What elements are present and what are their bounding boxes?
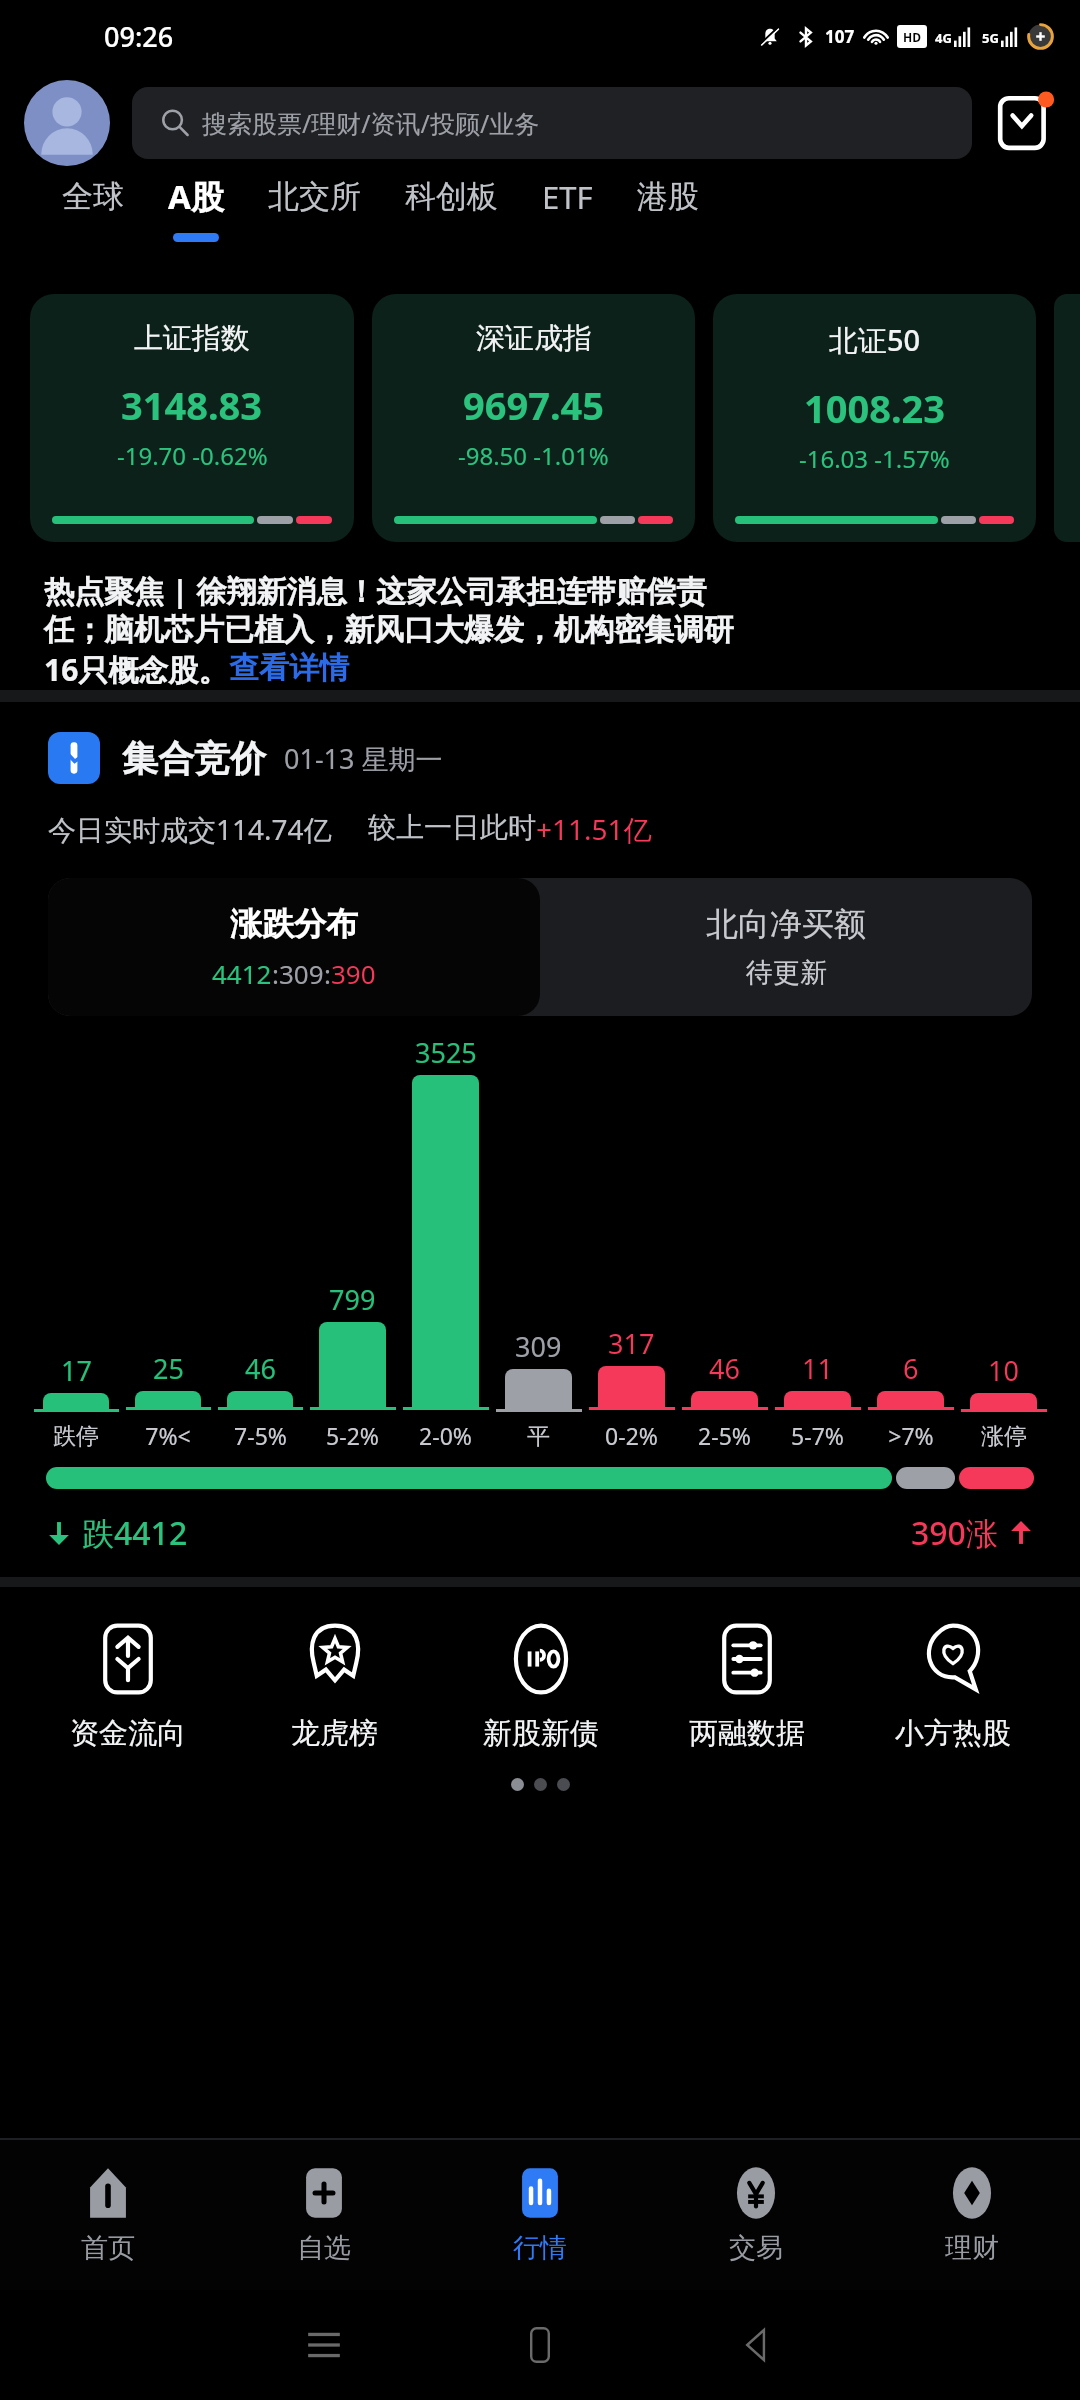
button[interactable]: 热点聚焦 | 徐翔新消息！这家公司承担连带赔偿责 <box>44 570 1040 690</box>
button[interactable]: 港股 <box>615 177 721 239</box>
button[interactable]: 自选 <box>216 2140 432 2290</box>
button[interactable]: A股 <box>146 174 246 242</box>
button[interactable]: 小方热股 <box>850 1621 1056 1752</box>
staticText: 深证成指 <box>476 320 592 357</box>
button[interactable]: Profile <box>24 80 110 166</box>
button[interactable]: 3525 <box>399 1034 492 1451</box>
staticText: 热点聚焦 | 徐翔新消息！这家公司承担连带赔偿责 <box>44 570 707 611</box>
staticText: >7% <box>888 1420 934 1451</box>
staticText: 2-5% <box>698 1420 751 1451</box>
button[interactable]: 11 <box>771 1034 864 1451</box>
staticText: 资金流向 <box>70 1715 186 1752</box>
button[interactable]: 新股新债 <box>438 1621 644 1752</box>
staticText: 北交所 <box>268 177 361 216</box>
staticText: 科创板 <box>405 177 498 216</box>
staticText: 5-7% <box>791 1420 844 1451</box>
staticText: 317 <box>608 1325 655 1362</box>
staticText: -19.70 -0.62% <box>117 439 268 472</box>
button[interactable]: 资金流向 <box>24 1621 231 1752</box>
button[interactable]: Home <box>432 2323 648 2367</box>
button[interactable]: 309 <box>492 1036 585 1451</box>
button[interactable]: 317 <box>585 1034 678 1451</box>
staticText: 4412 <box>212 956 272 991</box>
staticText: ETF <box>542 176 593 218</box>
button[interactable]: 理财 <box>864 2140 1080 2290</box>
button[interactable]: 两融数据 <box>644 1621 850 1752</box>
staticText: 涨跌分布 <box>230 904 358 944</box>
staticText: 7%< <box>145 1420 191 1451</box>
staticText: 北证50 <box>829 320 921 360</box>
button[interactable]: 科创板 <box>383 177 520 239</box>
button[interactable]: 25 <box>122 1034 214 1451</box>
staticText: 北向净买额 <box>706 904 866 944</box>
staticText: 较上一日此时 <box>368 810 536 845</box>
staticText: A股 <box>168 174 224 219</box>
staticText: 自选 <box>297 2231 351 2265</box>
staticText: 今日实时成交114.74亿 <box>48 810 332 848</box>
button[interactable]: Back <box>648 2323 864 2367</box>
button[interactable]: 46 <box>678 1034 771 1451</box>
button[interactable]: 799 <box>306 1034 399 1451</box>
staticText: 46 <box>245 1350 276 1387</box>
staticText: HD <box>903 29 921 45</box>
staticText: 港股 <box>637 177 699 216</box>
staticText: 跌停 <box>53 1422 99 1451</box>
button[interactable]: 北交所 <box>246 177 383 239</box>
staticText: 3525 <box>415 1034 477 1071</box>
button[interactable]: 全球 <box>40 177 146 239</box>
staticText: 46 <box>709 1350 740 1387</box>
staticText: 集合竞价 <box>122 736 266 781</box>
staticText: 09:26 <box>104 18 174 55</box>
button[interactable]: 6 <box>864 1034 957 1451</box>
button[interactable]: 北证50 <box>713 294 1036 542</box>
button[interactable]: 涨跌分布 <box>48 878 540 1016</box>
staticText: 跌4412 <box>82 1511 188 1555</box>
staticText: 首页 <box>81 2231 135 2265</box>
staticText: : <box>324 956 331 991</box>
staticText: 任；脑机芯片已植入，新风口大爆发，机构密集调研 <box>44 611 734 649</box>
button[interactable]: 46 <box>214 1034 306 1451</box>
staticText: 16只概念股。 <box>44 649 229 690</box>
staticText: 交易 <box>729 2231 783 2265</box>
staticText: 行情 <box>513 2231 567 2265</box>
button[interactable]: 上证指数 <box>30 294 354 542</box>
staticText: 涨停 <box>981 1422 1027 1451</box>
staticText: 4G <box>935 29 952 47</box>
staticText: : <box>272 956 279 991</box>
staticText: 309 <box>515 1328 562 1365</box>
staticText: 5-2% <box>326 1420 379 1451</box>
button[interactable]: 北向净买额 <box>540 878 1032 1016</box>
staticText: 新股新债 <box>483 1715 599 1752</box>
button[interactable]: 17 <box>30 1036 122 1451</box>
staticText: 9697.45 <box>463 379 605 431</box>
staticText: +11.51亿 <box>536 810 652 848</box>
staticText: 6 <box>903 1350 919 1387</box>
staticText: -16.03 -1.57% <box>799 442 950 475</box>
staticText: 龙虎榜 <box>291 1715 378 1752</box>
button[interactable]: 龙虎榜 <box>231 1621 438 1752</box>
button[interactable]: ETF <box>520 176 615 241</box>
button[interactable]: 10 <box>957 1036 1050 1451</box>
staticText: 01-13 星期一 <box>284 740 443 777</box>
staticText: 799 <box>329 1281 376 1318</box>
button[interactable]: Recents <box>216 2323 432 2367</box>
staticText: 理财 <box>945 2231 999 2265</box>
button[interactable]: 搜索股票/理财/资讯/投顾/业务 <box>132 87 972 159</box>
button[interactable]: 深证成指 <box>372 294 695 542</box>
staticText: 7-5% <box>234 1420 287 1451</box>
staticText: 全球 <box>62 177 124 216</box>
staticText: 10 <box>988 1352 1019 1389</box>
staticText: 17 <box>61 1352 92 1389</box>
button[interactable]: 交易 <box>648 2140 864 2290</box>
button[interactable]: Messages <box>994 92 1056 154</box>
staticText: 1008.23 <box>804 382 946 434</box>
staticText: 上证指数 <box>134 320 250 357</box>
staticText: 390 <box>331 956 376 991</box>
button[interactable]: 行情 <box>432 2140 648 2290</box>
button[interactable]: 首页 <box>0 2140 216 2290</box>
staticText: -98.50 -1.01% <box>458 439 609 472</box>
staticText: 11 <box>802 1350 833 1387</box>
staticText: 5G <box>982 29 999 47</box>
staticText: 107 <box>825 25 855 48</box>
staticText: 25 <box>153 1350 184 1387</box>
